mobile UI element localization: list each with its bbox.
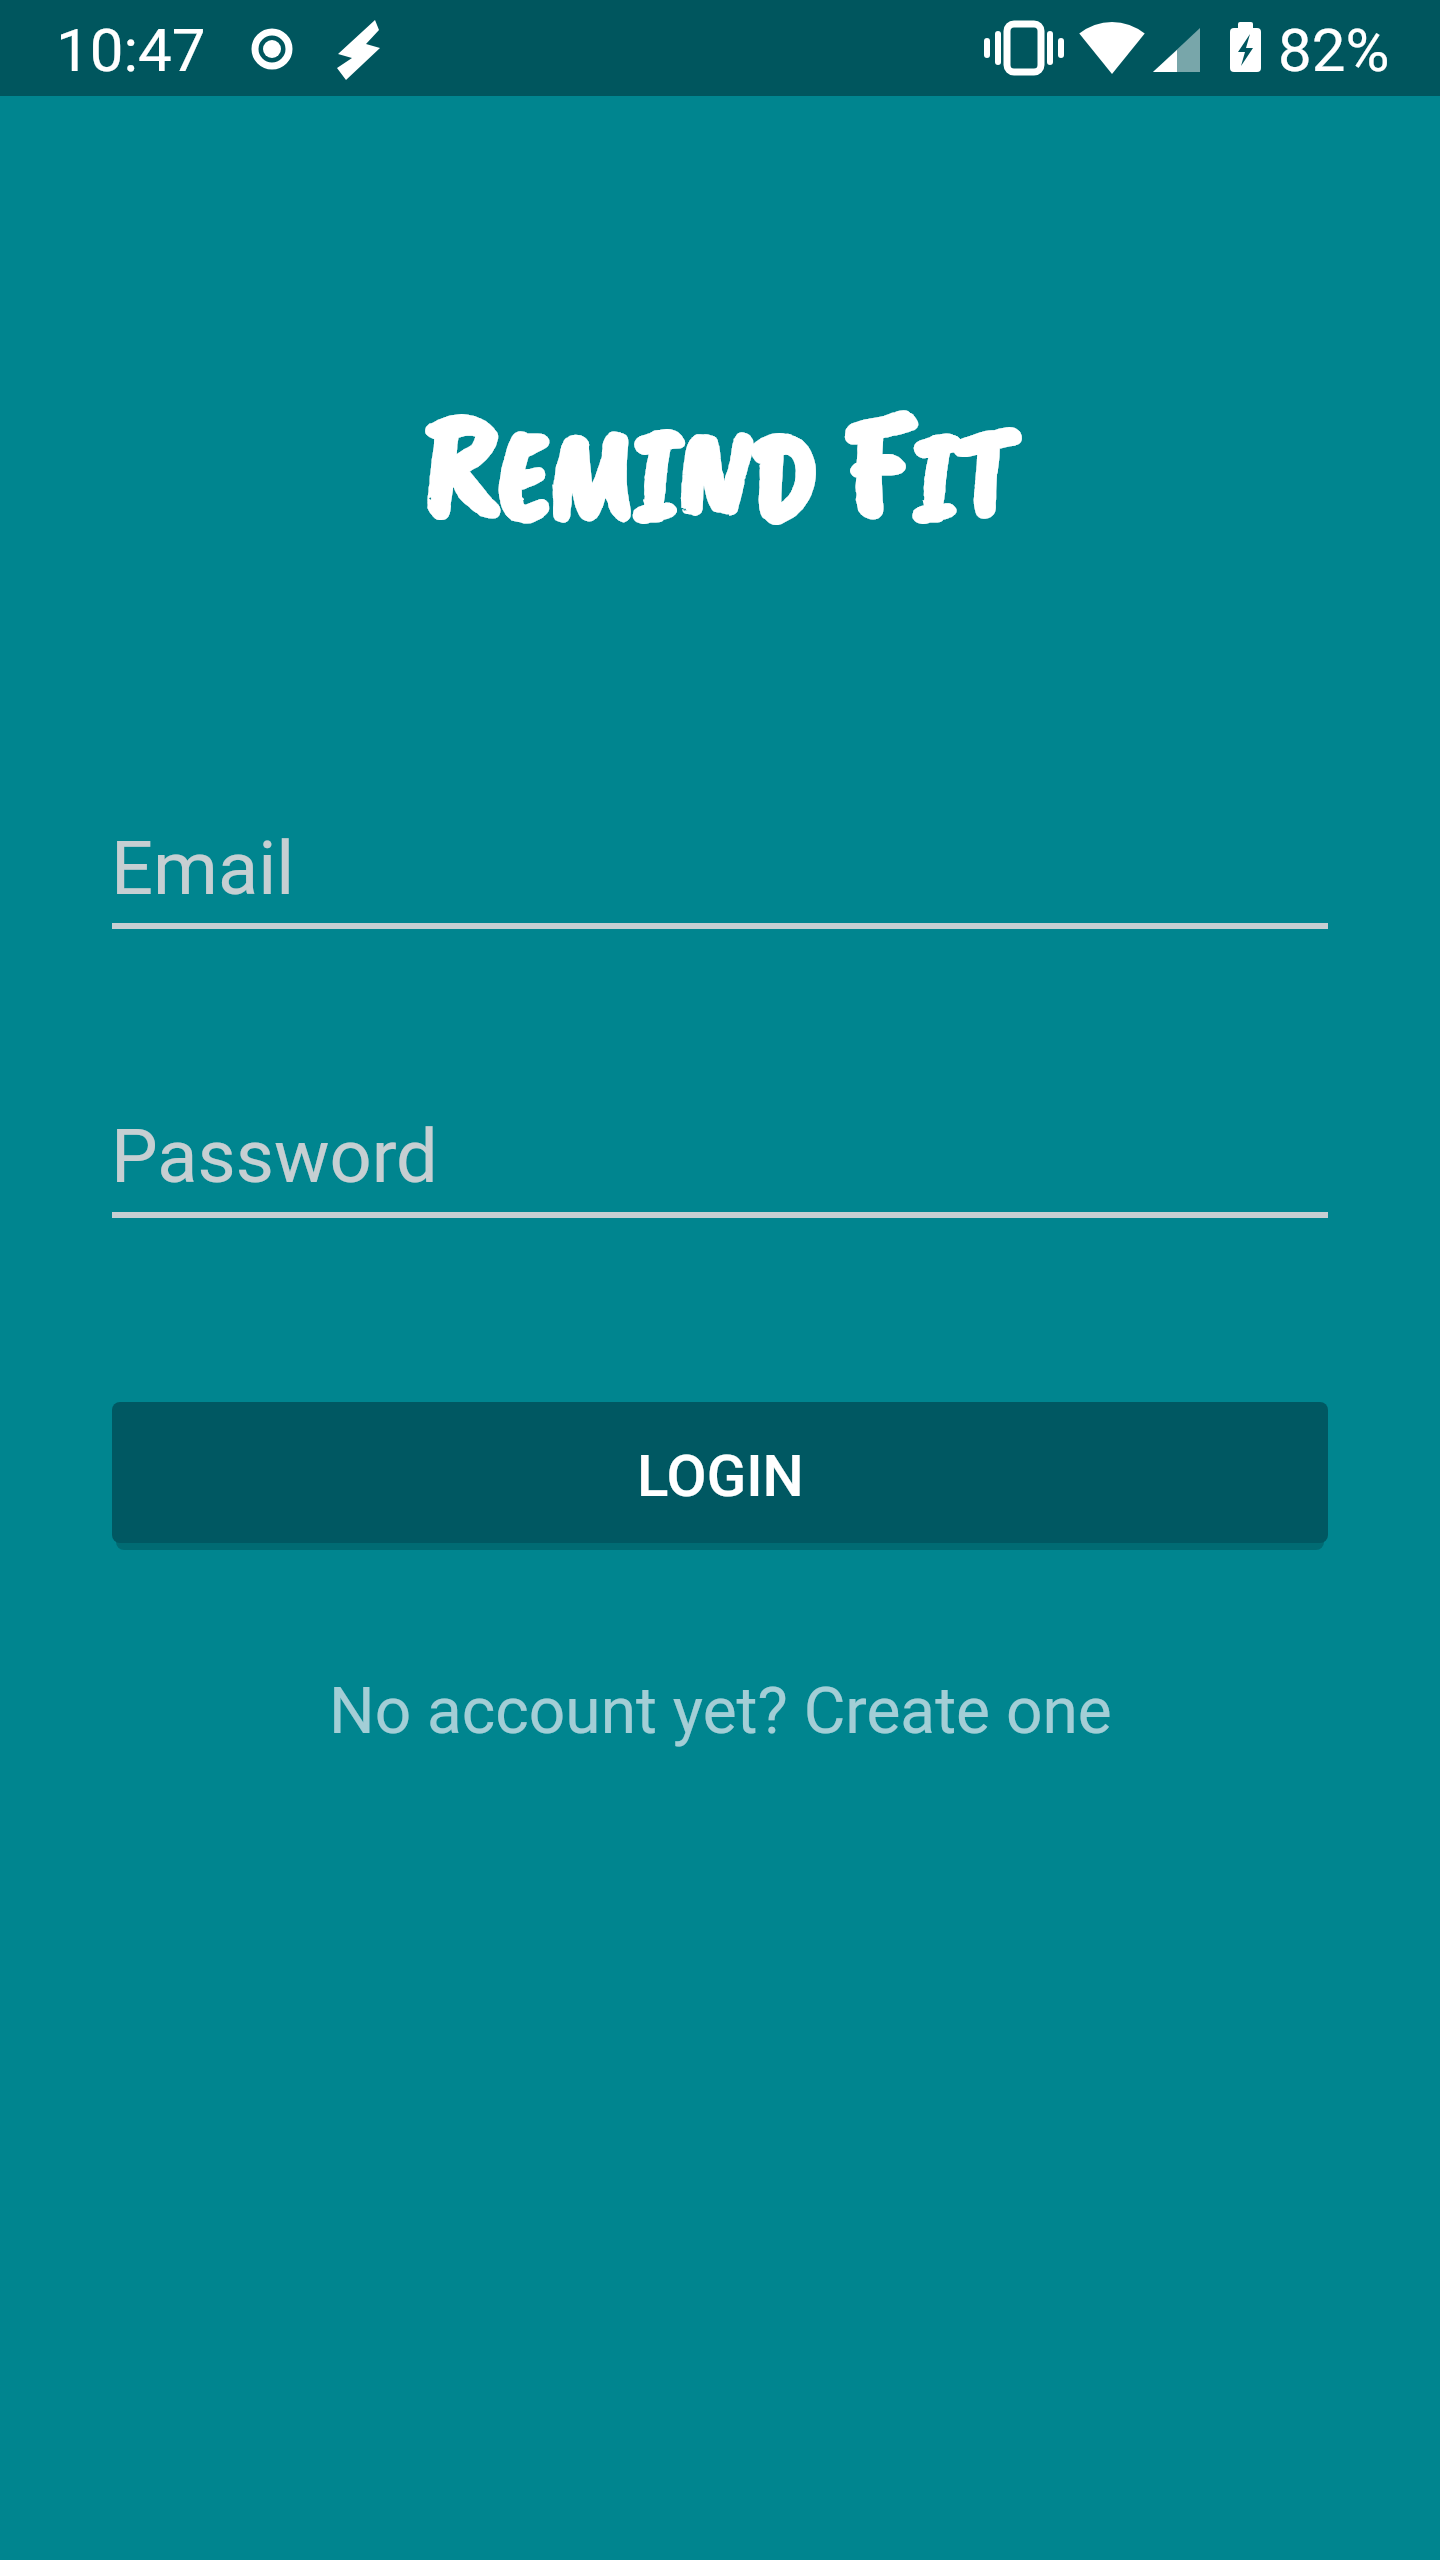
staticText: Password xyxy=(111,1113,438,1200)
staticText: REMIND FIT xyxy=(424,371,1016,560)
button[interactable] xyxy=(112,800,1328,930)
staticText: 10:47 xyxy=(56,15,206,85)
staticText: 82% xyxy=(1278,15,1390,85)
staticText: Email xyxy=(111,825,295,912)
button[interactable]: LOGIN xyxy=(112,1402,1328,1543)
staticText: No account yet? Create one xyxy=(329,1674,1112,1749)
staticText: REMIND FIT xyxy=(424,371,1016,560)
button[interactable] xyxy=(112,1088,1328,1218)
button[interactable]: No account yet? Create one xyxy=(329,1674,1112,1749)
staticText: LOGIN xyxy=(637,1442,804,1510)
